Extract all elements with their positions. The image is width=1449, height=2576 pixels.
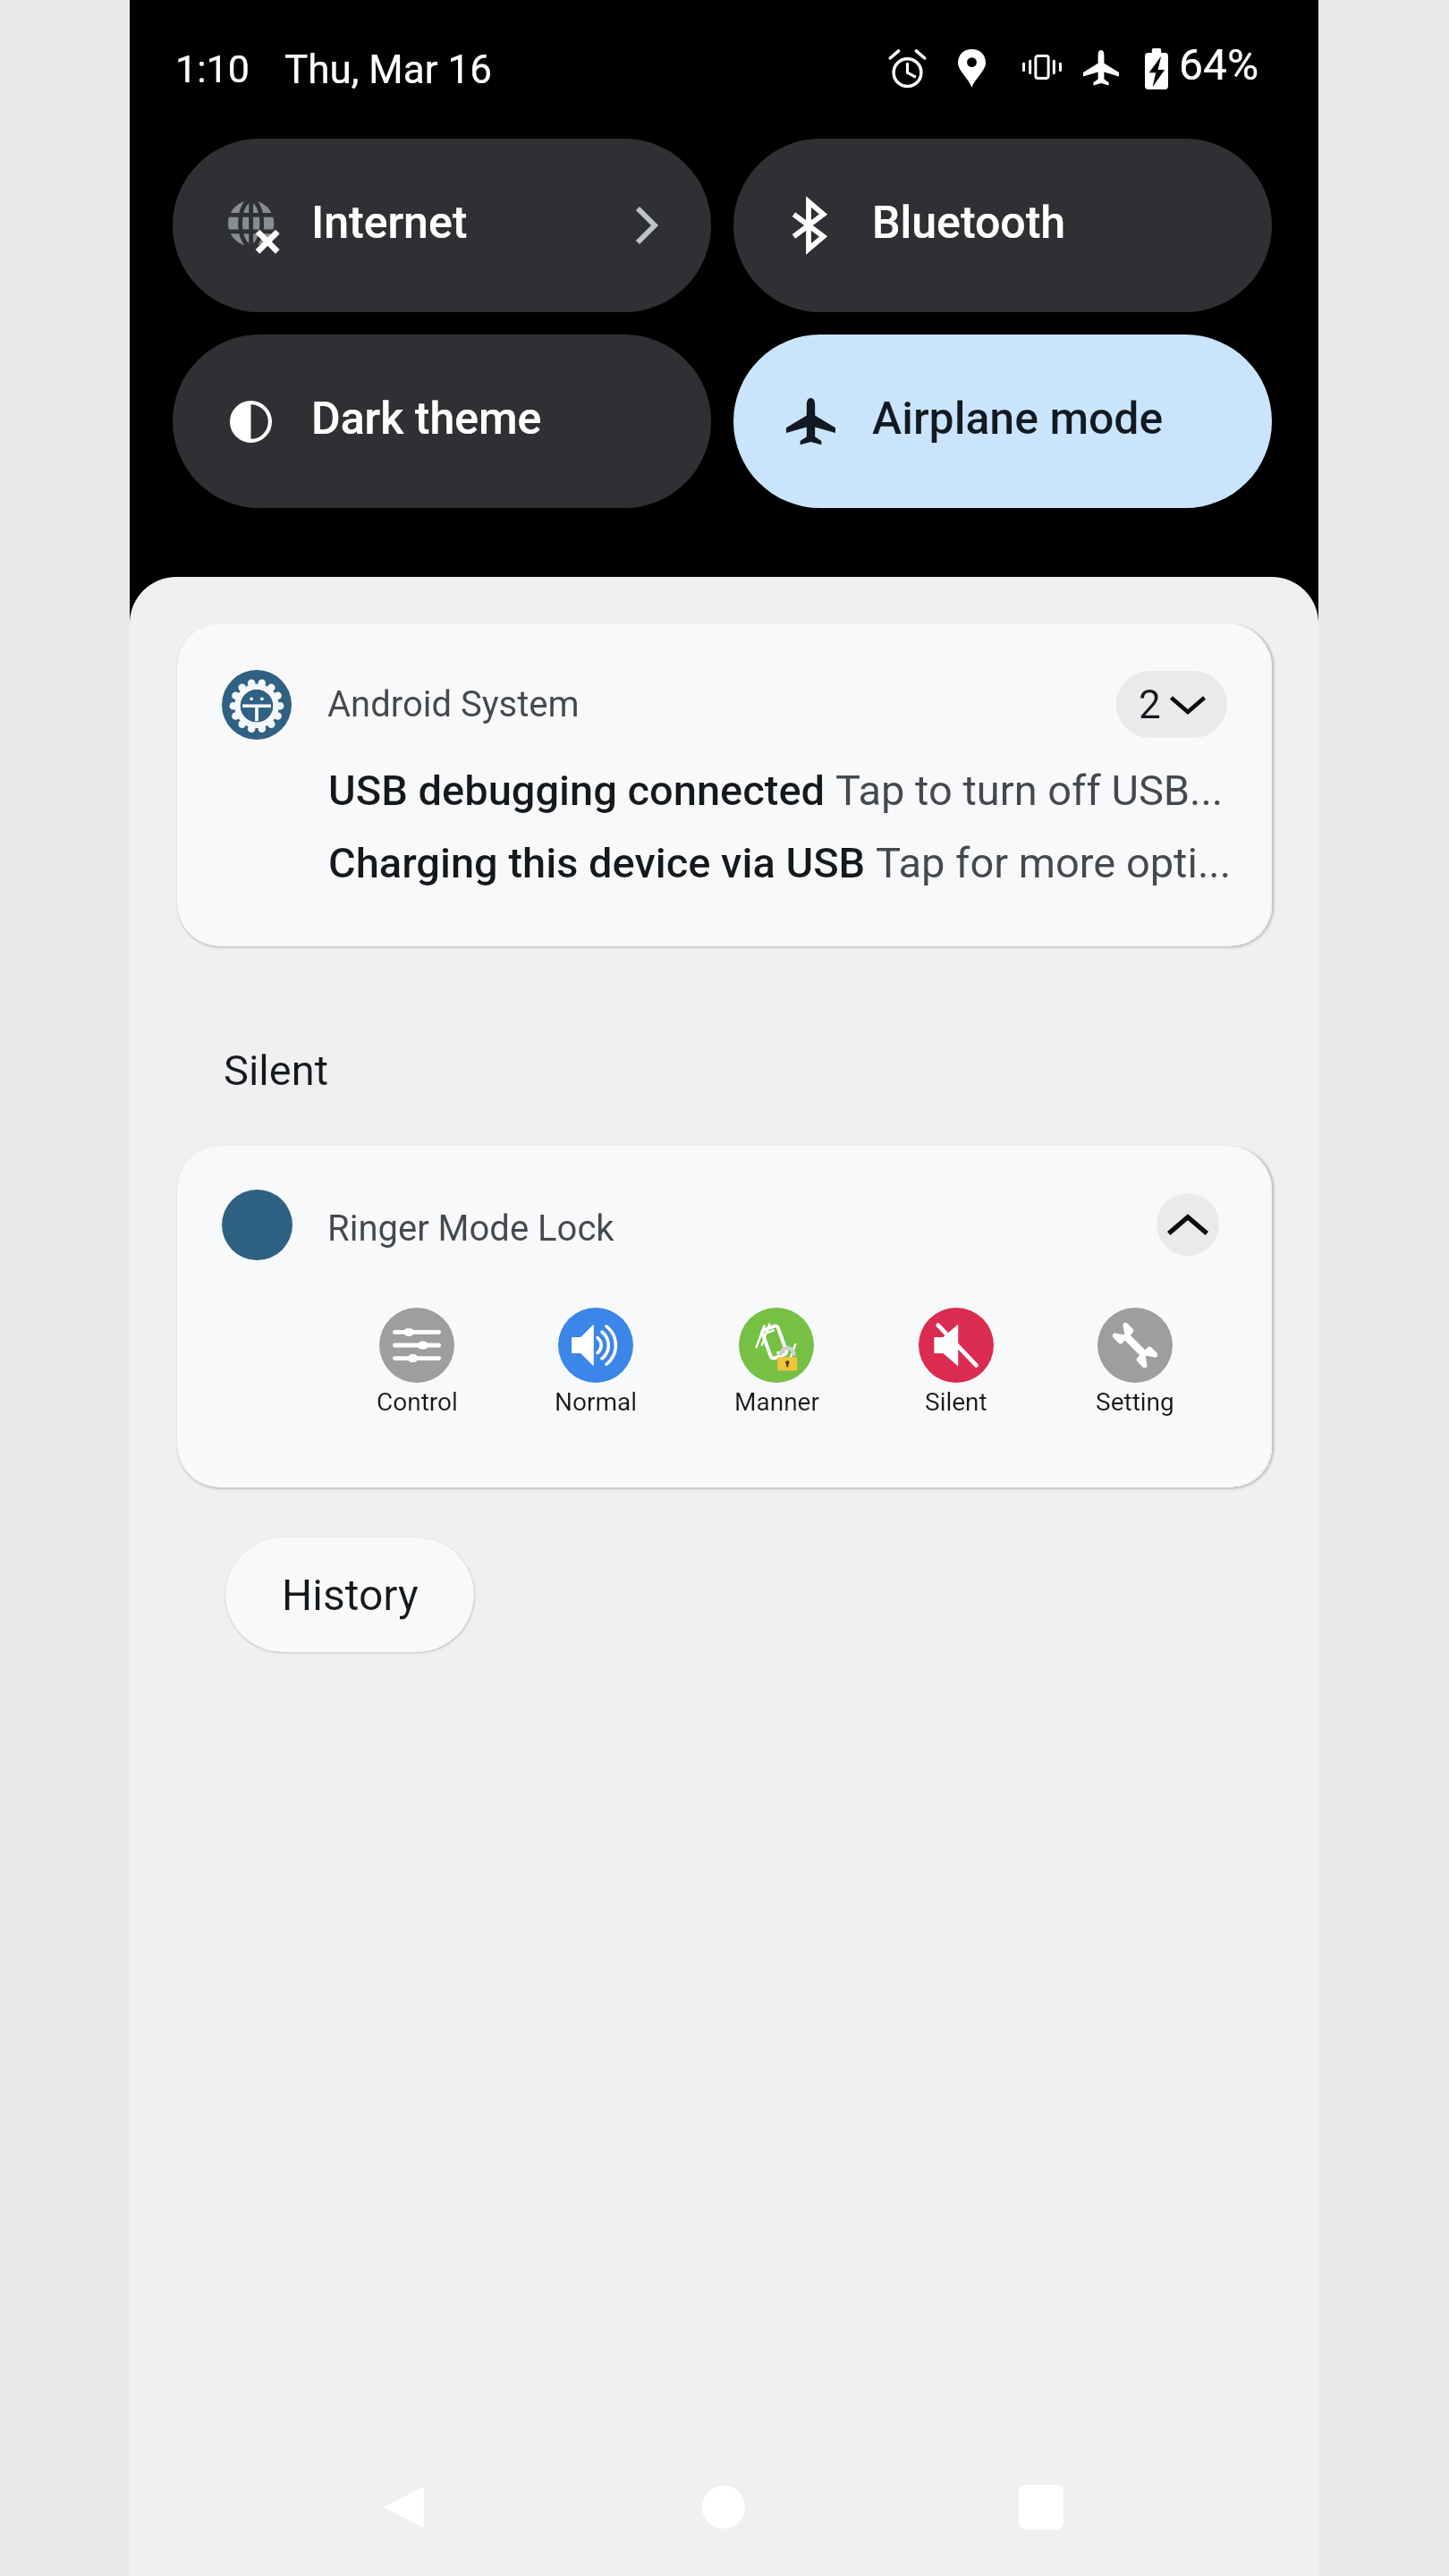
button[interactable]: Silent	[892, 1308, 1021, 1417]
staticText: Normal	[555, 1387, 638, 1417]
button[interactable]: Normal	[531, 1308, 660, 1417]
staticText: 1:10	[175, 47, 250, 91]
button[interactable]: Internet	[173, 139, 711, 312]
staticText: USB debugging connected	[328, 766, 835, 815]
staticText: 64%	[1179, 39, 1259, 89]
button[interactable]: Manner	[712, 1308, 841, 1417]
button[interactable]: Airplane mode	[733, 335, 1272, 508]
staticText: Control	[377, 1387, 458, 1417]
staticText: Ringer Mode Lock	[327, 1207, 614, 1250]
staticText: 2	[1139, 682, 1161, 728]
staticText: Charging this device via USB	[328, 838, 876, 887]
staticText: Setting	[1096, 1387, 1174, 1417]
button[interactable]: Home	[674, 2458, 773, 2556]
button[interactable]: Dark theme	[173, 335, 711, 508]
staticText: Bluetooth	[872, 197, 1066, 250]
button[interactable]: Setting	[1071, 1308, 1199, 1417]
button[interactable]: Back	[355, 2458, 453, 2556]
staticText: Silent	[224, 1046, 329, 1095]
button[interactable]: Recents	[992, 2458, 1090, 2556]
staticText: Dark theme	[311, 393, 542, 445]
staticText: Airplane mode	[872, 393, 1164, 445]
button[interactable]: Control	[352, 1308, 481, 1417]
button[interactable]: Android System	[177, 623, 1271, 946]
staticText: Tap to turn off USB...	[835, 766, 1224, 815]
staticText: Android System	[327, 683, 580, 725]
button[interactable]: History	[225, 1538, 474, 1652]
staticText: History	[282, 1570, 419, 1620]
button[interactable]: Collapse	[1157, 1193, 1219, 1256]
button[interactable]: 2	[1116, 671, 1227, 738]
staticText: Internet	[311, 197, 468, 250]
staticText: Thu, Mar 16	[284, 47, 492, 93]
staticText: Silent	[925, 1387, 987, 1417]
staticText: Manner	[734, 1387, 819, 1417]
button[interactable]: Bluetooth	[733, 139, 1272, 312]
staticText: Tap for more opti...	[876, 838, 1232, 887]
button[interactable]: Ringer Mode Lock	[177, 1146, 1271, 1487]
